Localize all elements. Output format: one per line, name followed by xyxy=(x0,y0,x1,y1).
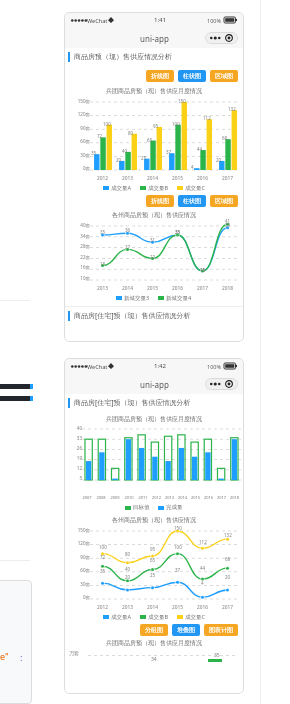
staticText: 30套 xyxy=(64,581,90,587)
staticText: 44 xyxy=(200,565,206,571)
staticText: 新城交量3 xyxy=(124,294,150,302)
staticText: 成交量C xyxy=(185,613,205,621)
button[interactable]: 商品房[住宅]预（现）售供应情况分析 xyxy=(64,307,244,324)
staticText: 商品房[住宅]预（现）售供应情况分析 xyxy=(74,398,191,408)
staticText: 成交量C xyxy=(185,184,205,192)
staticText: 18 xyxy=(100,261,106,267)
staticText: 目标值 xyxy=(133,504,150,511)
staticText: 80 xyxy=(125,551,131,557)
staticText: 柱状图 xyxy=(183,72,201,80)
staticText: 2015 xyxy=(165,604,190,611)
staticText: 150套 xyxy=(64,527,90,533)
staticText: 2008 xyxy=(94,495,108,500)
button[interactable]: 柱状图 xyxy=(178,70,206,82)
staticText: 35 xyxy=(100,229,106,235)
staticText: 35 xyxy=(175,229,181,235)
staticText: 40 xyxy=(64,425,82,431)
staticText: 0套 xyxy=(64,165,90,171)
staticText: 成交量A xyxy=(111,184,132,192)
button[interactable]: 图表计图 xyxy=(204,624,238,636)
staticText: 40 xyxy=(125,566,131,572)
staticText: : xyxy=(20,651,23,663)
staticText: 2007 xyxy=(80,495,94,500)
staticText: 区域图 xyxy=(215,197,233,205)
staticText: 成交量B xyxy=(148,184,169,192)
staticText: 1:42 xyxy=(154,362,166,370)
staticText: 33 xyxy=(64,435,82,441)
staticText: 成交量B xyxy=(148,613,169,621)
staticText: 图表计图 xyxy=(209,626,233,634)
staticText: 22 xyxy=(150,254,156,260)
staticText: 4 xyxy=(201,580,204,586)
staticText: 兵团商品房预（现）售供应月度情况 xyxy=(64,87,244,95)
staticText: 10套 xyxy=(64,275,90,281)
staticText: 1:41 xyxy=(154,16,166,24)
staticText: 35 xyxy=(91,150,97,156)
staticText: 35 xyxy=(214,652,220,659)
button[interactable]: 分组图 xyxy=(140,624,168,636)
staticText: 41 xyxy=(225,218,231,224)
staticText: 15 xyxy=(200,267,206,273)
staticText: 16套 xyxy=(64,264,90,270)
staticText: 150 xyxy=(178,98,186,104)
staticText: 柱状图 xyxy=(183,197,201,205)
button[interactable]: 柱状图 xyxy=(178,195,206,207)
staticText: 35 xyxy=(175,229,181,235)
staticText: 2017 xyxy=(215,175,240,182)
staticText: 2016 xyxy=(165,285,190,292)
staticText: 60套 xyxy=(64,567,90,573)
button[interactable]: 折线图 xyxy=(146,195,174,207)
staticText: 折线图 xyxy=(151,197,169,205)
staticText: 2014 xyxy=(140,604,165,611)
staticText: 2009 xyxy=(108,495,122,500)
staticText: 40 xyxy=(122,148,128,154)
staticText: 2014 xyxy=(115,285,140,292)
staticText: 2013 xyxy=(163,495,176,500)
button[interactable]: 商品房[住宅]预（现）售供应情况分析 xyxy=(64,394,244,411)
staticText: 2013 xyxy=(115,175,140,182)
button[interactable]: More and close xyxy=(210,34,233,42)
staticText: 65 xyxy=(147,137,153,143)
button[interactable]: 区域图 xyxy=(210,70,238,82)
staticText: 2011 xyxy=(136,495,150,500)
staticText: 44 xyxy=(197,146,203,152)
staticText: 20 xyxy=(125,574,131,580)
button[interactable]: 折线图 xyxy=(146,70,174,82)
button[interactable]: 堆叠图 xyxy=(172,624,200,636)
staticText: 31 xyxy=(150,237,156,243)
staticText: 5 xyxy=(64,475,82,481)
staticText: uni-app xyxy=(140,379,169,390)
staticText: 分组图 xyxy=(145,626,163,634)
staticText: 112 xyxy=(203,115,211,121)
staticText: 25 xyxy=(141,155,147,161)
staticText: 2014 xyxy=(140,175,165,182)
staticText: 兵团商品房预（现）售供应月度情况 xyxy=(64,415,244,423)
staticText: 各州商品房预（现）售供应情况 xyxy=(64,516,244,524)
staticText: 95 xyxy=(153,123,159,129)
staticText: 39 xyxy=(225,222,231,228)
staticText: 2015 xyxy=(189,495,202,500)
button[interactable]: 区域图 xyxy=(210,195,238,207)
staticText: uni-app xyxy=(140,33,169,44)
staticText: 2018 xyxy=(228,495,241,500)
staticText: 19 xyxy=(64,455,82,461)
staticText: 区域图 xyxy=(215,72,233,80)
staticText: 商品房[住宅]预（现）售供应情况分析 xyxy=(74,311,191,321)
staticText: WeChat xyxy=(87,363,108,370)
staticText: 100 xyxy=(174,544,182,550)
staticText: e" xyxy=(0,650,9,662)
staticText: 60套 xyxy=(64,138,90,144)
staticText: 34 xyxy=(151,656,157,663)
staticText: 68 xyxy=(222,135,228,141)
staticText: 20 xyxy=(216,157,222,163)
staticText: 150 xyxy=(174,525,182,531)
staticText: 2016 xyxy=(202,495,215,500)
staticText: 20 xyxy=(116,157,122,163)
staticText: 30套 xyxy=(64,152,90,158)
staticText: 100% xyxy=(207,363,222,370)
button[interactable]: 商品房预（现）售供应情况分析 xyxy=(64,48,244,65)
staticText: 2010 xyxy=(122,495,136,500)
staticText: 15 xyxy=(200,267,206,273)
staticText: 37 xyxy=(175,567,181,573)
button[interactable]: More and close xyxy=(210,380,233,388)
